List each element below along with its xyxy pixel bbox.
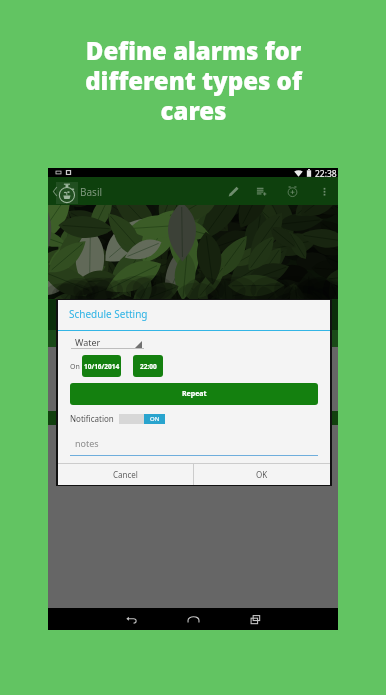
button[interactable]: More options: [310, 177, 338, 205]
staticText: Schedule Setting: [69, 307, 148, 321]
staticText: ON: [150, 415, 160, 423]
button[interactable]: Water: [71, 336, 144, 349]
button[interactable]: Cancel: [58, 464, 193, 485]
staticText: Repeat: [182, 389, 207, 399]
staticText: 10/16/2014: [84, 362, 120, 371]
button[interactable]: Recent apps: [245, 609, 265, 629]
button[interactable]: Add alarm: [278, 177, 306, 205]
button[interactable]: 22:00: [133, 355, 163, 377]
staticText: Define alarms for different types of car…: [85, 34, 302, 127]
button[interactable]: Add note: [247, 177, 275, 205]
button[interactable]: ON: [119, 414, 165, 424]
staticText: Basil: [80, 185, 103, 199]
button[interactable]: Back: [121, 609, 141, 629]
button[interactable]: OK: [194, 464, 330, 485]
button[interactable]: Repeat: [70, 383, 318, 405]
button[interactable]: Plant icon: [56, 182, 78, 204]
button[interactable]: notes: [70, 436, 318, 455]
staticText: On: [70, 362, 80, 372]
button[interactable]: 10/16/2014: [82, 355, 121, 377]
button[interactable]: Navigate up: [49, 177, 60, 205]
staticText: Cancel: [113, 469, 138, 480]
staticText: 22:38: [315, 168, 337, 177]
staticText: Notification: [70, 413, 114, 424]
staticText: Water: [75, 336, 101, 348]
staticText: notes: [75, 437, 99, 449]
button[interactable]: Home: [183, 609, 203, 629]
staticText: OK: [256, 469, 268, 480]
button[interactable]: Edit: [219, 177, 247, 205]
staticText: 22:00: [140, 362, 157, 371]
